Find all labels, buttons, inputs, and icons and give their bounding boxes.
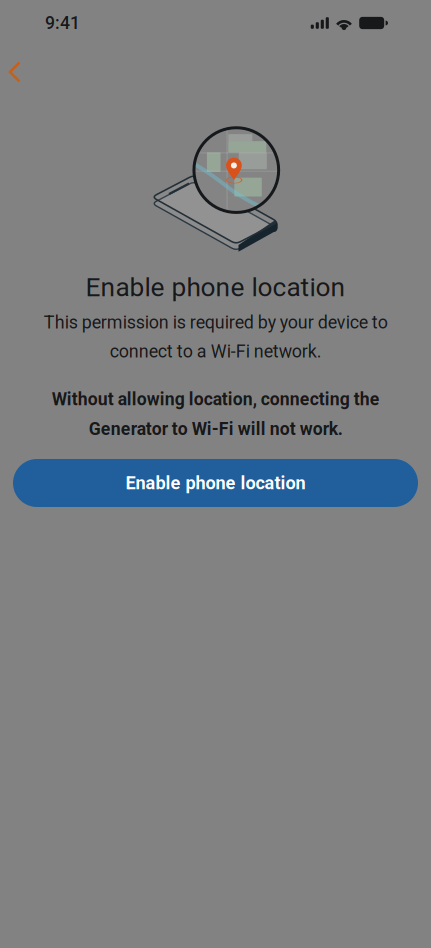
button[interactable]: Back [0, 50, 40, 94]
staticText: Enable phone location [85, 272, 345, 303]
staticText: 9:41 [45, 13, 80, 33]
staticText: Enable phone location [125, 472, 305, 494]
staticText: Without allowing location, connecting th… [51, 389, 379, 439]
staticText: This permission is required by your devi… [43, 312, 387, 362]
button[interactable]: Enable phone location [13, 459, 418, 507]
